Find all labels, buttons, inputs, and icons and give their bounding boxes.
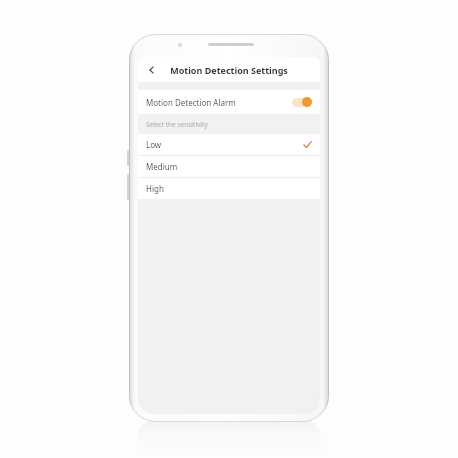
button[interactable]: Medium: [138, 156, 320, 177]
staticText: Motion Detection Settings: [170, 64, 288, 76]
staticText: Medium: [146, 161, 178, 172]
button[interactable]: Low: [138, 134, 320, 155]
button[interactable]: Motion Detection Alarm: [138, 90, 320, 114]
staticText: Select the sensitivity: [146, 120, 208, 129]
staticText: High: [146, 183, 164, 194]
staticText: Low: [146, 139, 162, 150]
button[interactable]: Back: [144, 62, 160, 78]
staticText: Motion Detection Alarm: [146, 97, 236, 108]
button[interactable]: High: [138, 178, 320, 199]
